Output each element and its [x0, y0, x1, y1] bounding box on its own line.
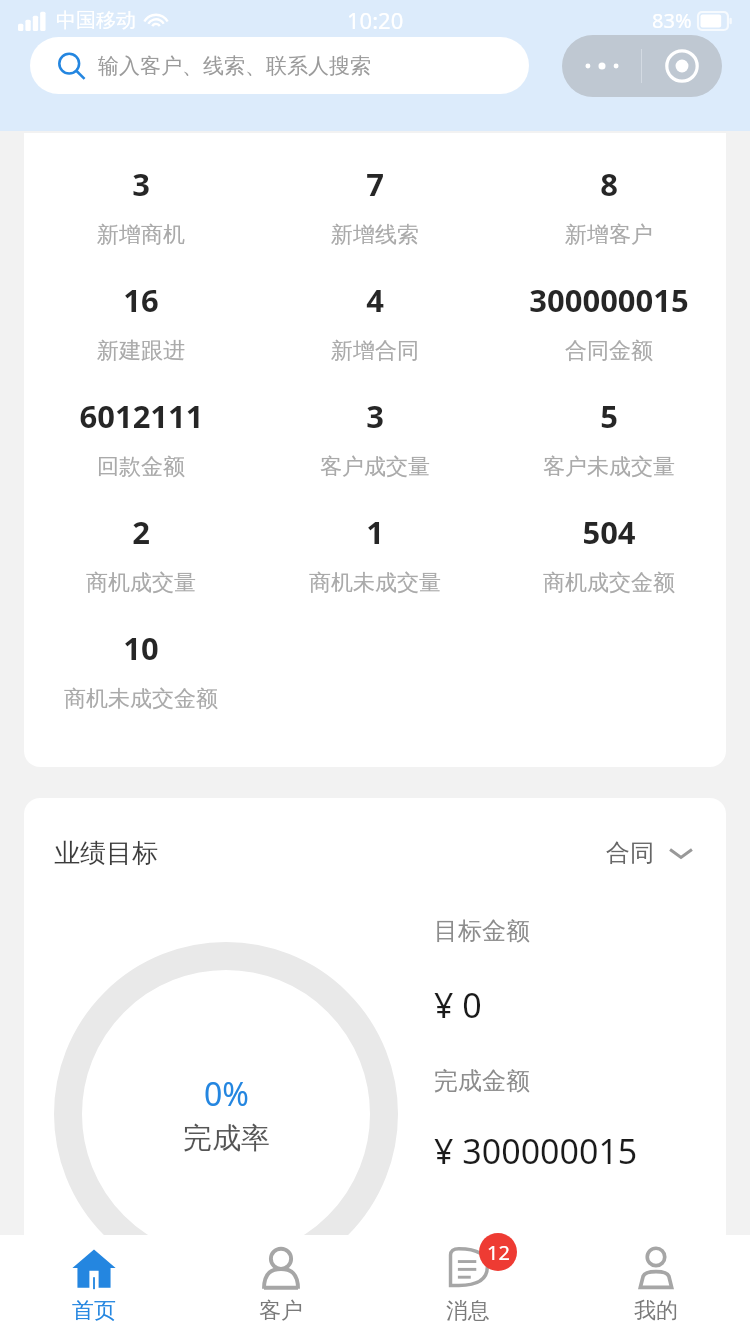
staticText: 完成金额: [434, 1066, 530, 1096]
staticText: 中国移动: [56, 8, 136, 33]
staticText: 客户未成交量: [543, 453, 675, 481]
staticText: 合同金额: [565, 337, 653, 365]
staticText: 10:20: [347, 5, 404, 35]
staticText: 客户: [259, 1297, 303, 1325]
staticText: 商机成交量: [86, 569, 196, 597]
staticText: 4: [366, 279, 384, 321]
staticText: 业绩目标: [54, 837, 158, 870]
staticText: 合同: [606, 838, 654, 868]
staticText: 83%: [652, 7, 692, 34]
staticText: 目标金额: [434, 916, 530, 946]
button[interactable]: 客户: [187, 1235, 374, 1334]
button[interactable]: 我的: [562, 1235, 750, 1334]
staticText: ¥ 300000015: [434, 1128, 638, 1174]
staticText: 12: [487, 1239, 510, 1266]
staticText: 8: [600, 163, 618, 205]
staticText: 客户成交量: [320, 453, 430, 481]
button[interactable]: 12: [374, 1235, 562, 1334]
staticText: 新增客户: [565, 221, 653, 249]
staticText: 回款金额: [97, 453, 185, 481]
staticText: 6012111: [79, 395, 204, 437]
button[interactable]: 合同: [600, 832, 700, 874]
staticText: 商机未成交量: [309, 569, 441, 597]
staticText: 新建跟进: [97, 337, 185, 365]
staticText: 输入客户、线索、联系人搜索: [98, 53, 371, 79]
button[interactable]: More options and close: [562, 35, 722, 97]
staticText: 504: [582, 511, 636, 553]
staticText: 新增合同: [331, 337, 419, 365]
staticText: 0%: [204, 1072, 249, 1116]
staticText: 1: [366, 511, 384, 553]
staticText: 10: [123, 627, 159, 669]
button[interactable]: 首页: [0, 1235, 187, 1334]
button[interactable]: 输入客户、线索、联系人搜索: [30, 37, 529, 94]
staticText: 首页: [72, 1297, 116, 1325]
staticText: 300000015: [529, 279, 689, 321]
staticText: 2: [132, 511, 150, 553]
staticText: 我的: [634, 1297, 678, 1325]
staticText: ¥ 0: [434, 982, 482, 1028]
staticText: 商机未成交金额: [64, 685, 218, 713]
staticText: 7: [366, 163, 384, 205]
staticText: 3: [132, 163, 150, 205]
staticText: 完成率: [183, 1120, 270, 1157]
staticText: 新增线索: [331, 221, 419, 249]
staticText: 新增商机: [97, 221, 185, 249]
staticText: 商机成交金额: [543, 569, 675, 597]
staticText: 消息: [446, 1297, 490, 1325]
staticText: 5: [600, 395, 618, 437]
staticText: 3: [366, 395, 384, 437]
staticText: 16: [123, 279, 159, 321]
